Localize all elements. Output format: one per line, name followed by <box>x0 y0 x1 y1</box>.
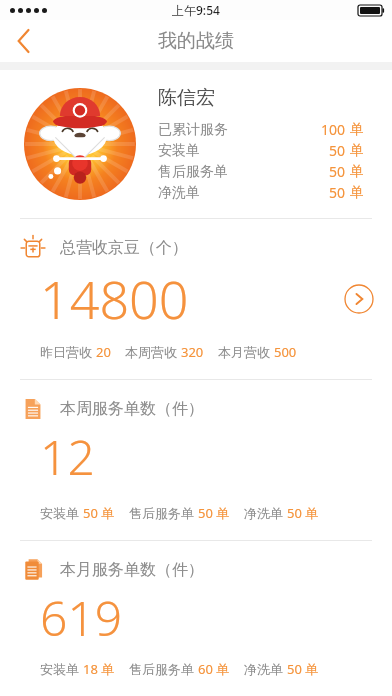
staticText: 总营收京豆（个） <box>60 238 188 258</box>
staticText: 20 <box>96 343 111 361</box>
staticText: 本周营收 <box>125 344 177 360</box>
staticText: 安装单 <box>40 505 79 521</box>
staticText: 净洗单 <box>244 661 283 677</box>
staticText: 本月服务单数（件） <box>60 560 204 580</box>
staticText: 已累计服务 <box>158 121 228 139</box>
staticText: 50 单 <box>287 504 319 522</box>
staticText: 我的战绩 <box>158 29 234 53</box>
staticText: 净洗单 <box>158 184 200 202</box>
staticText: 60 单 <box>198 660 230 678</box>
button[interactable]: View details <box>344 284 374 314</box>
staticText: 上午9:54 <box>172 2 220 18</box>
staticText: 100 <box>321 120 346 139</box>
button[interactable]: 本周服务单数（件） <box>0 380 392 540</box>
staticText: 18 单 <box>83 660 115 678</box>
staticText: 320 <box>181 343 204 361</box>
staticText: 净洗单 <box>244 505 283 521</box>
staticText: 50 <box>329 183 346 202</box>
staticText: 50 单 <box>287 660 319 678</box>
button[interactable]: 本月服务单数（件） <box>0 541 392 696</box>
staticText: 本周服务单数（件） <box>60 399 204 419</box>
staticText: 50 <box>329 162 346 181</box>
staticText: 50 单 <box>83 504 115 522</box>
staticText: 安装单 <box>40 661 79 677</box>
staticText: 50 <box>329 141 346 160</box>
staticText: 昨日营收 <box>40 344 92 360</box>
staticText: 本月营收 <box>218 344 270 360</box>
button[interactable]: 陈信宏 <box>0 70 392 218</box>
button[interactable]: 总营收京豆（个） <box>0 219 392 379</box>
staticText: 单 <box>350 163 364 181</box>
staticText: 售后服务单 <box>158 163 228 181</box>
staticText: 单 <box>350 184 364 202</box>
staticText: 500 <box>274 343 297 361</box>
staticText: 售后服务单 <box>129 661 194 677</box>
staticText: 12 <box>40 424 95 489</box>
button[interactable]: Back <box>0 20 48 62</box>
staticText: 安装单 <box>158 142 200 160</box>
staticText: 14800 <box>40 263 189 334</box>
staticText: 陈信宏 <box>158 86 215 110</box>
staticText: 50 单 <box>198 504 230 522</box>
staticText: 售后服务单 <box>129 505 194 521</box>
staticText: 单 <box>350 142 364 160</box>
staticText: 单 <box>350 121 364 139</box>
staticText: 619 <box>40 585 123 650</box>
